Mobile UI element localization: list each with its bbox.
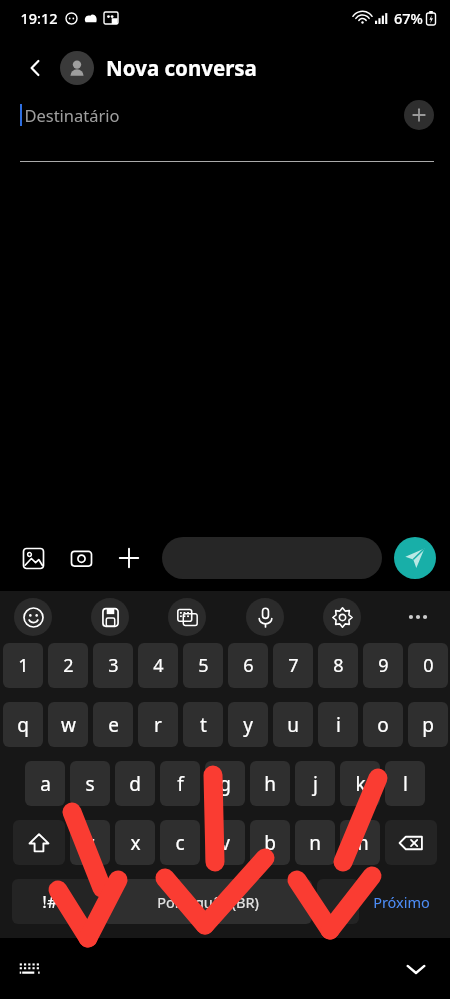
button[interactable]: v <box>205 820 245 865</box>
button[interactable]: Configurações <box>323 598 361 636</box>
staticText: d <box>129 771 141 797</box>
button[interactable]: r <box>138 702 178 747</box>
staticText: l <box>403 771 408 797</box>
button[interactable]: w <box>48 702 88 747</box>
staticText: h <box>264 771 276 797</box>
staticText: Destinatário <box>24 104 120 126</box>
button[interactable]: 5 <box>183 643 223 688</box>
staticText: 0 <box>423 653 434 678</box>
button[interactable]: Tecla <box>385 820 437 865</box>
button[interactable]: 1 <box>3 643 43 688</box>
button[interactable]: n <box>295 820 335 865</box>
staticText: i <box>336 712 341 738</box>
button[interactable]: Voz <box>246 598 284 636</box>
staticText: m <box>351 830 369 856</box>
staticText: 2 <box>63 653 74 678</box>
button[interactable]: p <box>408 702 448 747</box>
button[interactable]: l <box>385 761 425 806</box>
button[interactable]: 6 <box>228 643 268 688</box>
staticText: a <box>40 771 51 797</box>
button[interactable]: Galeria <box>14 539 52 577</box>
button[interactable]: m <box>340 820 380 865</box>
staticText: r <box>154 712 162 738</box>
staticText: e <box>108 712 119 738</box>
staticText: x <box>130 830 141 856</box>
button[interactable]: t <box>183 702 223 747</box>
staticText: z <box>86 830 95 856</box>
button[interactable]: 3 <box>93 643 133 688</box>
button[interactable]: u <box>273 702 313 747</box>
button[interactable]: o <box>363 702 403 747</box>
button[interactable]: Mais opções <box>110 539 148 577</box>
button[interactable]: Português (BR) <box>103 879 312 924</box>
button[interactable]: Câmera <box>62 539 100 577</box>
button[interactable]: 2 <box>48 643 88 688</box>
button[interactable]: 0 <box>408 643 448 688</box>
button[interactable]: a <box>25 761 65 806</box>
button[interactable] <box>162 537 382 579</box>
staticText: c <box>175 830 185 856</box>
button[interactable]: Voltar <box>18 50 54 86</box>
button[interactable]: 7 <box>273 643 313 688</box>
button[interactable]: Próximo <box>364 879 438 924</box>
staticText: 5 <box>198 653 209 678</box>
staticText: 1 <box>18 653 29 678</box>
staticText: 3 <box>108 653 119 678</box>
staticText: n <box>309 830 321 856</box>
staticText: j <box>313 771 318 797</box>
button[interactable]: k <box>340 761 380 806</box>
button[interactable]: j <box>295 761 335 806</box>
button[interactable]: !#1 <box>12 879 98 924</box>
staticText: k <box>355 771 366 797</box>
staticText: 8 <box>333 653 344 678</box>
staticText: !#1 <box>42 890 68 913</box>
button[interactable]: Modos do teclado <box>168 598 206 636</box>
button[interactable]: Emoji <box>14 598 52 636</box>
button[interactable]: Fechar teclado <box>396 949 436 989</box>
staticText: 4 <box>153 653 164 678</box>
staticText: u <box>287 712 299 738</box>
staticText: t <box>200 712 207 738</box>
staticText: Português (BR) <box>157 892 259 912</box>
staticText: f <box>177 771 184 797</box>
button[interactable]: 4 <box>138 643 178 688</box>
button[interactable]: Enviar <box>394 537 436 579</box>
button[interactable]: x <box>115 820 155 865</box>
button[interactable]: d <box>115 761 155 806</box>
staticText: g <box>219 771 231 797</box>
button[interactable]: z <box>70 820 110 865</box>
button[interactable]: . <box>317 879 359 924</box>
staticText: y <box>243 712 253 738</box>
staticText: Nova conversa <box>106 54 257 82</box>
staticText: 67% <box>394 8 423 28</box>
button[interactable]: Mais <box>400 599 436 635</box>
staticText: o <box>377 712 389 738</box>
button[interactable]: e <box>93 702 133 747</box>
staticText: 7 <box>288 653 299 678</box>
button[interactable]: s <box>70 761 110 806</box>
button[interactable]: g <box>205 761 245 806</box>
staticText: s <box>85 771 95 797</box>
staticText: q <box>17 712 29 738</box>
staticText: Próximo <box>373 892 430 912</box>
button[interactable]: Adicionar destinatário <box>404 100 434 130</box>
button[interactable]: Tecla <box>13 820 65 865</box>
button[interactable]: 9 <box>363 643 403 688</box>
button[interactable]: b <box>250 820 290 865</box>
button[interactable]: c <box>160 820 200 865</box>
button[interactable]: Área de transferência <box>91 598 129 636</box>
button[interactable]: q <box>3 702 43 747</box>
button[interactable]: i <box>318 702 358 747</box>
staticText: p <box>422 712 434 738</box>
staticText: v <box>220 830 230 856</box>
button[interactable]: Teclado <box>10 949 50 989</box>
button[interactable]: f <box>160 761 200 806</box>
button[interactable]: 8 <box>318 643 358 688</box>
staticText: 9 <box>378 653 389 678</box>
button[interactable]: Contato <box>60 51 94 85</box>
button[interactable]: y <box>228 702 268 747</box>
staticText: 6 <box>243 653 254 678</box>
button[interactable]: h <box>250 761 290 806</box>
staticText: 19:12 <box>20 8 58 28</box>
staticText: w <box>61 712 76 738</box>
